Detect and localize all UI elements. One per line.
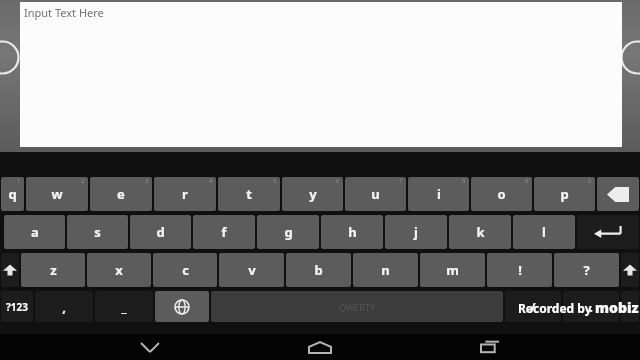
staticText: 1 (17, 177, 21, 185)
button[interactable]: x (87, 253, 151, 287)
button[interactable]: i (408, 177, 469, 211)
button[interactable]: l (513, 215, 575, 249)
staticText: 5 (273, 177, 277, 185)
staticText: mobiz (595, 298, 639, 317)
button[interactable]: w (26, 177, 88, 211)
button[interactable]: y (282, 177, 343, 211)
button[interactable]: f (193, 215, 255, 249)
staticText: . (589, 298, 593, 316)
staticText: 9 (525, 177, 529, 185)
button[interactable]: Recent apps (470, 334, 510, 360)
staticText: u (371, 185, 380, 203)
button[interactable]: u (345, 177, 406, 211)
staticText: s (94, 223, 101, 241)
button[interactable]: Input Text Here (20, 2, 622, 147)
button[interactable]: s (67, 215, 128, 249)
button[interactable]: / (505, 291, 561, 322)
staticText: / (530, 298, 536, 316)
button[interactable]: m (420, 253, 485, 287)
staticText: i (437, 185, 441, 203)
staticText: q (8, 185, 17, 203)
button[interactable]: Previous (0, 40, 20, 75)
staticText: QWERTY (339, 301, 376, 313)
button[interactable]: Home (300, 334, 340, 360)
staticText: v (248, 261, 256, 279)
staticText: Recorded by (518, 300, 595, 316)
button[interactable]: , (35, 291, 93, 322)
button[interactable]: Next (620, 40, 640, 75)
staticText: 7 (399, 177, 403, 185)
staticText: e (117, 185, 125, 203)
staticText: a (31, 223, 39, 241)
button[interactable]: Shift (1, 253, 19, 287)
button[interactable]: a (4, 215, 65, 249)
button[interactable]: Hide keyboard (130, 334, 170, 360)
button[interactable]: . (563, 291, 619, 322)
staticText: 0 (588, 177, 592, 185)
button[interactable]: g (257, 215, 319, 249)
button[interactable]: h (321, 215, 383, 249)
staticText: ? (583, 261, 590, 279)
button[interactable]: ?123 (1, 291, 33, 322)
staticText: 8 (462, 177, 466, 185)
button[interactable]: Change language (155, 291, 209, 322)
staticText: j (414, 223, 418, 241)
button[interactable]: d (130, 215, 191, 249)
button[interactable]: Shift (621, 253, 639, 287)
button[interactable]: Enter (577, 215, 639, 249)
staticText: l (542, 223, 546, 241)
staticText: d (156, 223, 165, 241)
staticText: o (497, 185, 506, 203)
staticText: c (182, 261, 189, 279)
button[interactable]: j (385, 215, 447, 249)
button[interactable]: p (534, 177, 595, 211)
staticText: z (50, 261, 57, 279)
staticText: Input Text Here (24, 5, 104, 20)
staticText: h (348, 223, 357, 241)
button[interactable]: k (449, 215, 511, 249)
staticText: t (246, 185, 252, 203)
button[interactable]: _ (95, 291, 153, 322)
staticText: b (314, 261, 323, 279)
staticText: g (284, 223, 293, 241)
staticText: k (476, 223, 485, 241)
button[interactable]: o (471, 177, 532, 211)
button[interactable]: t (218, 177, 280, 211)
button[interactable]: r (154, 177, 216, 211)
staticText: p (560, 185, 569, 203)
staticText: x (115, 261, 123, 279)
button[interactable]: ! (487, 253, 552, 287)
button[interactable]: e (90, 177, 152, 211)
staticText: , (62, 298, 66, 316)
button[interactable]: q (1, 177, 24, 211)
staticText: 3 (145, 177, 149, 185)
staticText: 6 (336, 177, 340, 185)
staticText: n (381, 261, 390, 279)
button[interactable]: b (286, 253, 351, 287)
button[interactable]: v (219, 253, 284, 287)
button[interactable]: Emoji (621, 291, 639, 322)
staticText: 2 (81, 177, 85, 185)
staticText: m (446, 261, 459, 279)
staticText: _ (121, 298, 127, 316)
button[interactable]: z (21, 253, 85, 287)
staticText: ?123 (6, 300, 28, 314)
button[interactable]: n (353, 253, 418, 287)
staticText: 4 (209, 177, 213, 185)
button[interactable]: Backspace (597, 177, 639, 211)
staticText: ! (518, 261, 522, 279)
staticText: r (182, 185, 188, 203)
staticText: f (221, 223, 227, 241)
button[interactable]: c (153, 253, 217, 287)
button[interactable]: ? (554, 253, 619, 287)
staticText: w (51, 185, 63, 203)
staticText: y (309, 185, 317, 203)
